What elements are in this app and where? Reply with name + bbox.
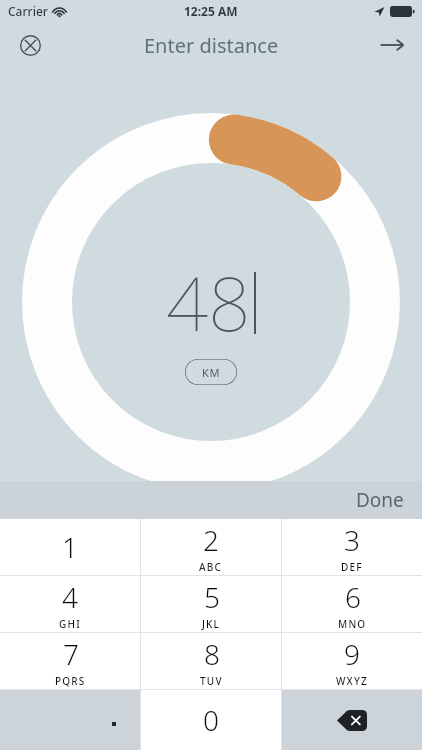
staticText: 7 (63, 635, 79, 673)
staticText: 3 (344, 521, 360, 559)
button[interactable]: KM (185, 359, 237, 385)
staticText: DEF (341, 560, 363, 574)
staticText: Done (356, 487, 404, 513)
staticText: 6 (345, 578, 361, 616)
staticText: Carrier (8, 3, 48, 19)
button[interactable]: 5 (141, 576, 281, 632)
staticText: 8 (204, 635, 220, 673)
staticText: 0 (203, 701, 219, 739)
staticText: 48 (166, 252, 251, 353)
staticText: KM (202, 365, 221, 380)
button[interactable]: 9 (282, 633, 422, 689)
staticText: WXYZ (336, 674, 368, 688)
button[interactable]: 6 (282, 576, 422, 632)
button[interactable]: 4 (0, 576, 140, 632)
button[interactable]: Done (338, 481, 422, 519)
button[interactable]: Backspace (282, 690, 422, 750)
staticText: ABC (199, 560, 223, 574)
staticText: PQRS (55, 674, 86, 688)
staticText: GHI (59, 617, 81, 631)
button[interactable]: 8 (141, 633, 281, 689)
button[interactable]: 2 (141, 519, 281, 575)
button[interactable]: 7 (0, 633, 140, 689)
button[interactable]: 1 (0, 519, 140, 575)
button[interactable]: 0 (141, 690, 281, 750)
staticText: 9 (344, 635, 360, 673)
button[interactable]: Close (10, 25, 50, 65)
staticText: 5 (204, 578, 220, 616)
staticText: TUV (200, 674, 223, 688)
button[interactable]: Decimal point (0, 690, 140, 750)
staticText: JKL (202, 617, 221, 631)
staticText: MNO (338, 617, 367, 631)
staticText: 12:25 AM (184, 3, 238, 19)
staticText: 1 (62, 528, 78, 566)
button[interactable]: 3 (282, 519, 422, 575)
staticText: 2 (203, 521, 219, 559)
staticText: Enter distance (144, 32, 279, 59)
button[interactable]: Next (370, 23, 414, 67)
staticText: 4 (62, 578, 78, 616)
